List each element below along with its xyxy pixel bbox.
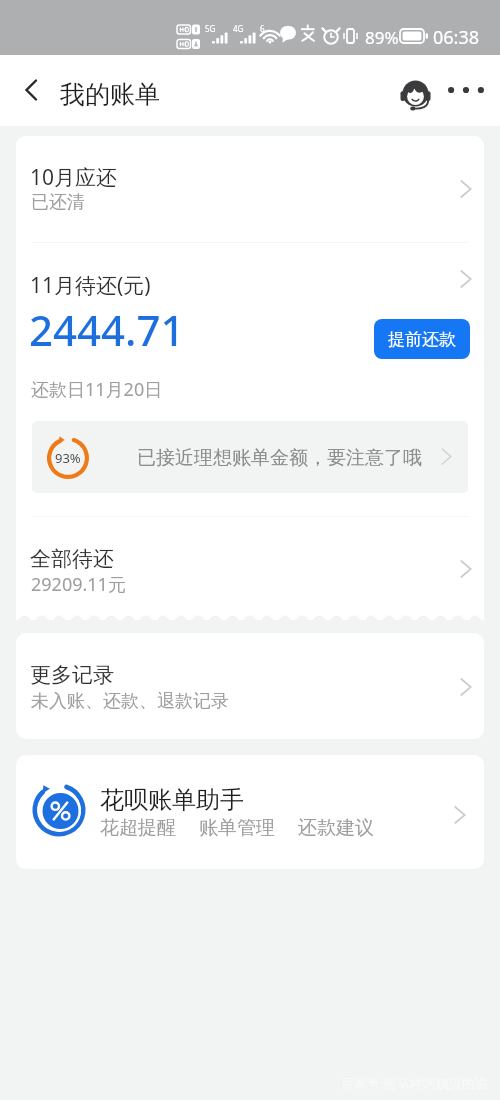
staticText: 未入账、还款、退款记录 (31, 690, 229, 713)
staticText: 29209.11元 (31, 572, 126, 597)
button[interactable]: 93% (32, 421, 468, 493)
staticText: 89% (365, 26, 399, 49)
staticText: 6 (260, 23, 265, 34)
staticText: 已还清 (31, 191, 85, 214)
staticText: 4G (233, 23, 244, 34)
staticText: 5G (205, 23, 216, 34)
staticText: 花呗账单助手 (100, 785, 244, 815)
button[interactable]: 全部待还 (16, 517, 484, 620)
staticText: 账单管理 (199, 816, 275, 840)
button[interactable]: 10月应还 (16, 136, 484, 242)
button[interactable]: Back (8, 68, 52, 112)
staticText: 10月应还 (30, 163, 118, 192)
staticText: 还款建议 (298, 816, 374, 840)
button[interactable]: Customer service (390, 67, 438, 115)
button[interactable]: 更多记录 (16, 633, 484, 739)
button[interactable]: 提前还款 (374, 319, 470, 359)
staticText: 提前还款 (388, 329, 456, 350)
button[interactable]: More options (443, 67, 489, 113)
staticText: 全部待还 (30, 546, 114, 572)
staticText: 花超提醒 (100, 816, 176, 840)
button[interactable]: 花呗账单助手 (16, 755, 484, 869)
staticText: 我的账单 (60, 79, 160, 110)
staticText: 更多记录 (30, 662, 114, 688)
staticText: 06:38 (433, 25, 480, 50)
staticText: 2444.71 (29, 301, 185, 358)
staticText: 已接近理想账单金额，要注意了哦 (137, 446, 422, 470)
staticText: 还款日11月20日 (31, 377, 163, 402)
staticText: 93% (55, 449, 81, 467)
staticText: 11月待还(元) (30, 271, 151, 300)
